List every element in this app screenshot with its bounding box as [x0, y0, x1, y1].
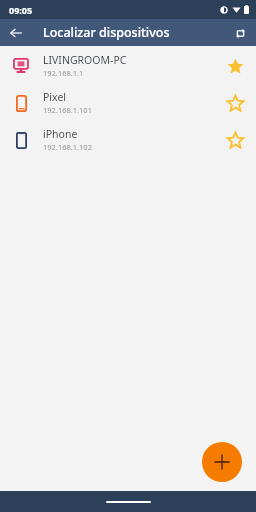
button[interactable]: Pixel: [0, 84, 256, 121]
staticText: 192.168.1.1: [43, 68, 84, 78]
button[interactable]: Refresh: [228, 21, 252, 45]
button[interactable]: Back: [3, 20, 29, 46]
button[interactable]: Favorite: [220, 88, 250, 118]
staticText: LIVINGROOM-PC: [43, 53, 127, 67]
staticText: 09:05: [9, 4, 33, 16]
staticText: Pixel: [43, 90, 67, 104]
button[interactable]: iPhone: [0, 121, 256, 158]
staticText: Localizar dispositivos: [43, 24, 170, 41]
button[interactable]: LIVINGROOM-PC: [0, 47, 256, 84]
staticText: 192.168.1.101: [43, 105, 92, 115]
button[interactable]: Unfavorite: [220, 51, 250, 81]
button[interactable]: Add device: [202, 442, 242, 482]
staticText: iPhone: [43, 127, 78, 141]
button[interactable]: Favorite: [220, 125, 250, 155]
staticText: 192.168.1.102: [43, 142, 92, 152]
